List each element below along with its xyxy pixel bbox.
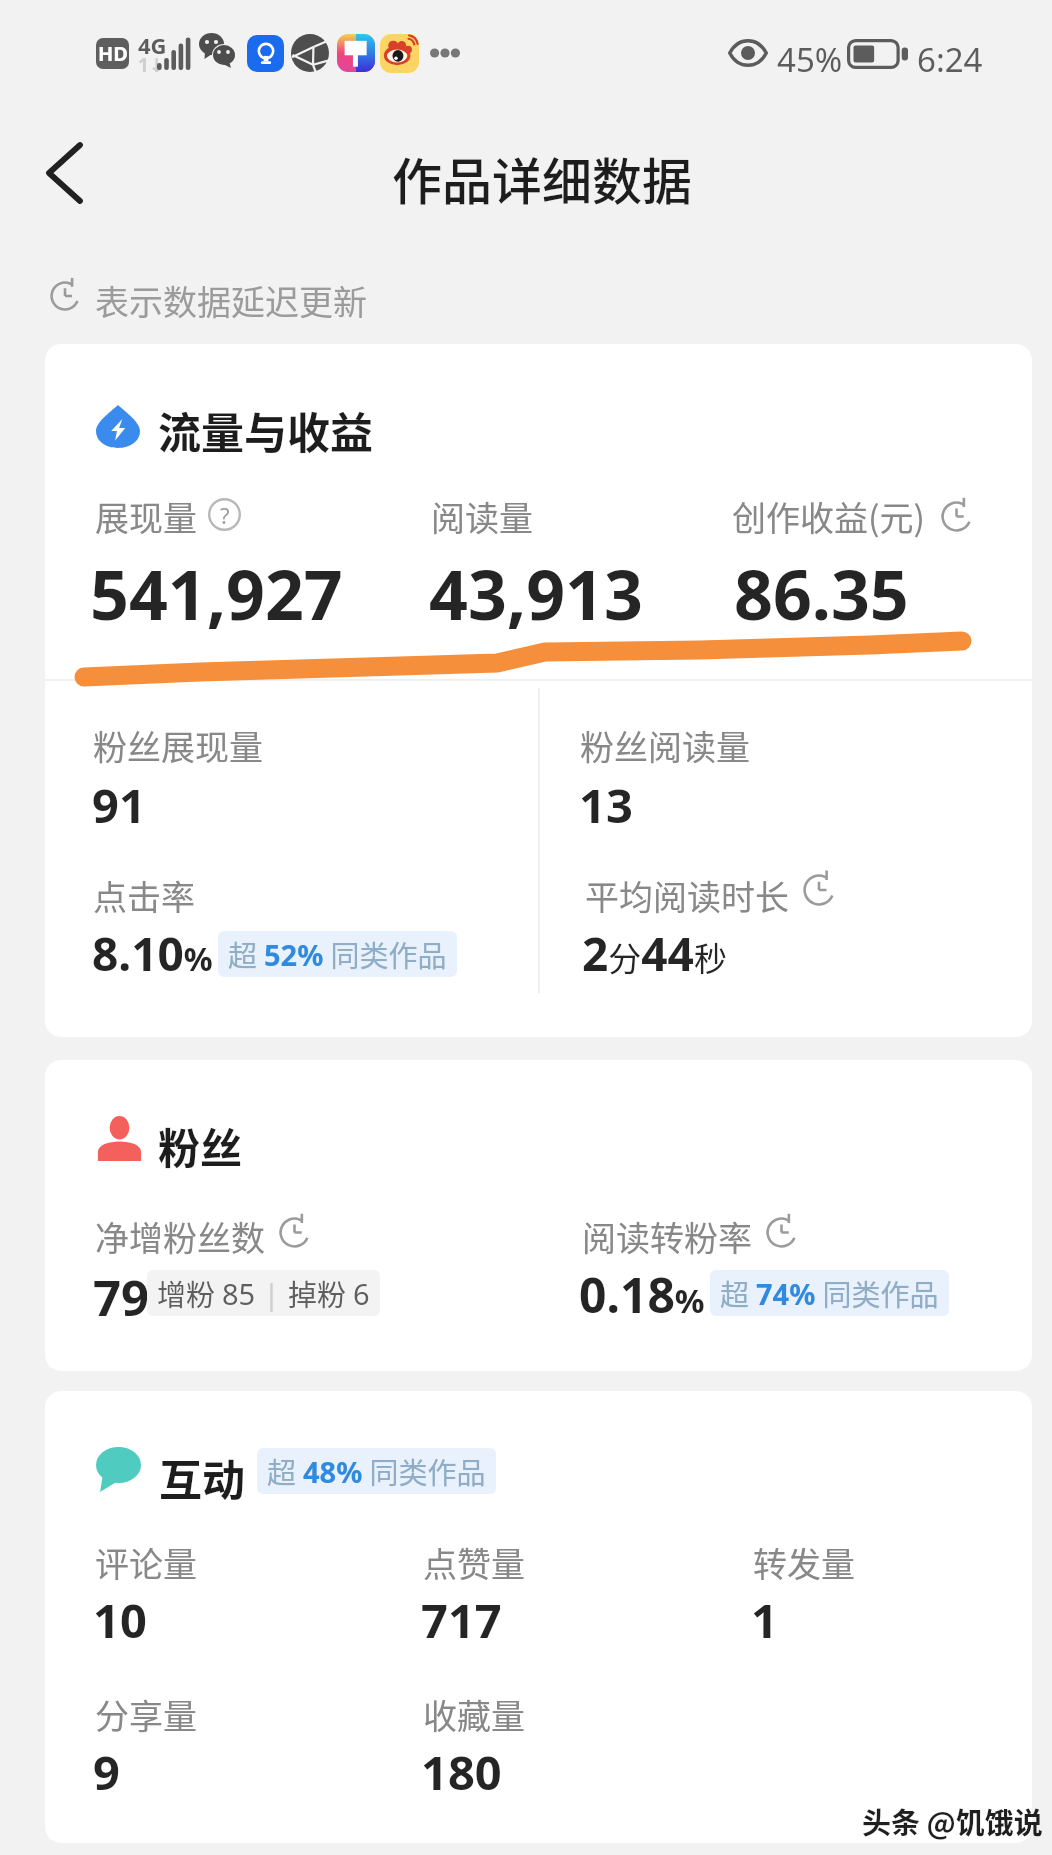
button[interactable]: 粉丝 [45, 1060, 1032, 1371]
staticText: 头条 @饥饿说 [862, 1800, 1043, 1842]
staticText: 10 [93, 1588, 147, 1652]
staticText: 超 [267, 1450, 303, 1492]
button[interactable]: Back [10, 118, 118, 228]
staticText: 74% [756, 1274, 816, 1313]
button[interactable]: 互动 [45, 1391, 1032, 1843]
staticText: 掉粉 [288, 1272, 353, 1314]
staticText: 13 [579, 773, 633, 837]
staticText: 6:24 [917, 37, 983, 82]
button[interactable]: 超 [218, 931, 457, 977]
staticText: 91 [92, 773, 146, 837]
staticText: 48% [303, 1452, 363, 1491]
staticText: 净增粉丝数 [95, 1212, 265, 1261]
staticText: 粉丝展现量 [93, 721, 263, 770]
button[interactable]: 分享量 [93, 1690, 393, 1800]
staticText: 同类作品 [816, 1272, 939, 1314]
staticText: 45% [777, 37, 843, 82]
staticText: 0.18% [579, 1262, 705, 1327]
staticText: 8.10% [92, 922, 213, 985]
staticText: HD [98, 40, 128, 67]
staticText: 4G [138, 30, 167, 60]
staticText: 互动 [159, 1446, 245, 1508]
staticText: 9 [93, 1740, 120, 1804]
staticText: 分享量 [95, 1690, 197, 1739]
staticText: 6 [353, 1274, 370, 1313]
staticText: 阅读量 [431, 492, 533, 541]
button[interactable]: 超 [710, 1270, 949, 1316]
staticText: 平均阅读时长 [585, 871, 789, 920]
button[interactable]: 转发量 [751, 1538, 1032, 1648]
staticText: 1 [751, 1588, 778, 1652]
staticText: 评论量 [95, 1538, 197, 1587]
button[interactable]: 增粉 [147, 1270, 380, 1316]
staticText: 同类作品 [363, 1450, 486, 1492]
staticText: 180 [421, 1740, 502, 1804]
staticText: 点赞量 [423, 1538, 525, 1587]
staticText: 作品详细数据 [392, 142, 692, 214]
staticText: 52% [264, 935, 324, 974]
staticText: 阅读转粉率 [582, 1212, 752, 1261]
staticText: 粉丝 [158, 1115, 243, 1176]
button[interactable]: 收藏量 [421, 1690, 721, 1800]
staticText: 2分44秒 [582, 922, 727, 985]
staticText: 转发量 [753, 1538, 855, 1587]
staticText: 1↓ [138, 52, 165, 78]
staticText: 展现量 [95, 492, 197, 541]
staticText: ? [220, 500, 230, 530]
staticText: 点击率 [93, 871, 195, 920]
staticText: 超 [228, 933, 264, 975]
staticText: 717 [421, 1588, 502, 1652]
staticText: 同类作品 [324, 933, 447, 975]
button[interactable]: 评论量 [93, 1538, 393, 1648]
staticText: 表示数据延迟更新 [95, 276, 367, 325]
staticText: 收藏量 [423, 1690, 525, 1739]
staticText: 86.35 [734, 547, 909, 640]
staticText: | [256, 1274, 288, 1313]
button[interactable]: 超 [257, 1448, 496, 1494]
staticText: 创作收益(元) [732, 492, 925, 541]
button[interactable]: 流量与收益 [45, 344, 1032, 1037]
staticText: 85 [222, 1274, 256, 1313]
button[interactable]: What is impressions [208, 498, 241, 531]
staticText: 43,913 [429, 547, 643, 640]
button[interactable]: 点赞量 [421, 1538, 721, 1648]
staticText: 79 [93, 1264, 150, 1331]
staticText: 流量与收益 [158, 399, 373, 461]
staticText: 541,927 [90, 547, 343, 640]
staticText: 增粉 [157, 1272, 222, 1314]
staticText: 粉丝阅读量 [580, 721, 750, 770]
staticText: 超 [720, 1272, 756, 1314]
